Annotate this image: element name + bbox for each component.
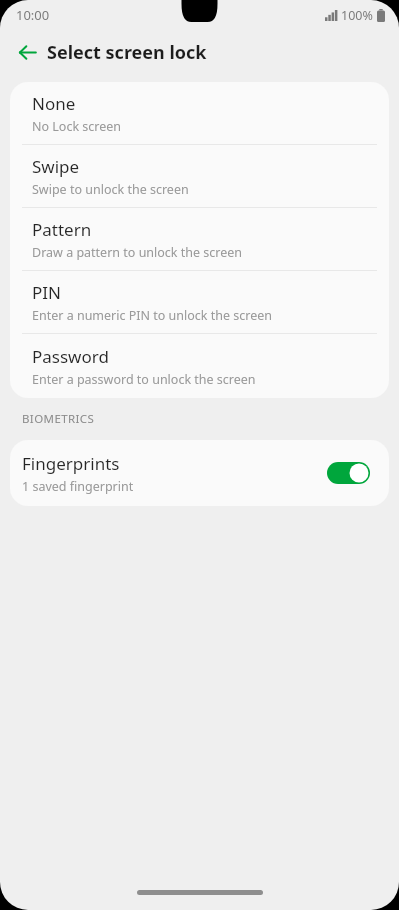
staticText: 10:00 xyxy=(16,6,50,24)
staticText: BIOMETRICS xyxy=(22,411,95,427)
staticText: PIN xyxy=(32,281,61,304)
staticText: Swipe to unlock the screen xyxy=(32,181,189,198)
staticText: 100% xyxy=(341,7,373,24)
button[interactable]: Pattern xyxy=(10,208,389,270)
staticText: Pattern xyxy=(32,218,92,241)
button[interactable]: Password xyxy=(10,334,389,398)
staticText: Enter a password to unlock the screen xyxy=(32,371,256,388)
button[interactable]: Back xyxy=(10,35,44,69)
button[interactable]: Fingerprints xyxy=(10,440,389,506)
staticText: Draw a pattern to unlock the screen xyxy=(32,244,243,261)
staticText: Fingerprints xyxy=(22,452,120,475)
button[interactable]: PIN xyxy=(10,271,389,333)
staticText: Swipe xyxy=(32,155,80,178)
button[interactable]: Swipe xyxy=(10,145,389,207)
button[interactable]: None xyxy=(10,82,389,144)
staticText: None xyxy=(32,92,76,115)
staticText: Enter a numeric PIN to unlock the screen xyxy=(32,307,273,324)
staticText: 1 saved fingerprint xyxy=(22,478,134,495)
staticText: No Lock screen xyxy=(32,118,122,135)
staticText: Password xyxy=(32,345,109,368)
button[interactable]: Fingerprints toggle, on xyxy=(327,462,370,484)
staticText: Select screen lock xyxy=(47,40,207,65)
